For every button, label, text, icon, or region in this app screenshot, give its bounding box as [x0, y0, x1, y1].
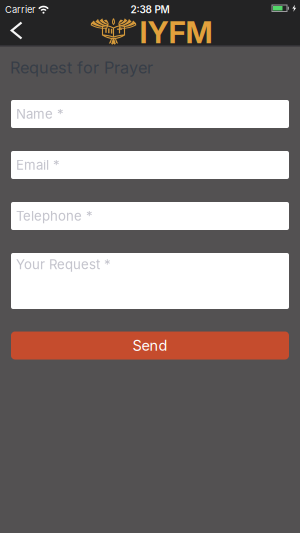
- textField[interactable]: Telephone *: [11, 202, 289, 230]
- textField[interactable]: Name *: [11, 100, 289, 128]
- button[interactable]: Back: [0, 13, 32, 47]
- staticText: Carrier: [5, 4, 36, 15]
- staticText: Your Request *: [16, 256, 111, 272]
- staticText: Request for Prayer: [10, 58, 153, 77]
- textField[interactable]: Email *: [11, 151, 289, 179]
- button[interactable]: Send: [11, 331, 289, 359]
- staticText: Send: [132, 337, 167, 354]
- staticText: Email *: [16, 157, 60, 173]
- staticText: 2:38 PM: [130, 3, 169, 16]
- textField[interactable]: Your Request *: [11, 253, 289, 309]
- staticText: IYFM: [139, 14, 212, 50]
- staticText: Telephone *: [16, 208, 93, 224]
- staticText: Name *: [16, 106, 64, 122]
